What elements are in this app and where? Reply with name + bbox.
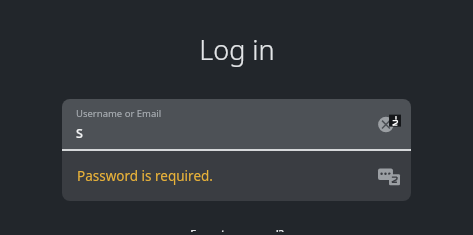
button[interactable]: Password suggestions — [378, 165, 400, 187]
staticText: Forgot password? — [190, 226, 284, 232]
button[interactable]: Forgot password? — [182, 223, 292, 235]
staticText: Username or Email — [76, 107, 162, 120]
button[interactable]: Username or Email — [62, 99, 411, 149]
staticText: Log in — [199, 31, 275, 68]
staticText: S — [76, 125, 83, 142]
button[interactable]: Clear text — [375, 111, 401, 137]
button[interactable]: Password is required. — [62, 151, 411, 201]
staticText: Password is required. — [77, 167, 378, 185]
